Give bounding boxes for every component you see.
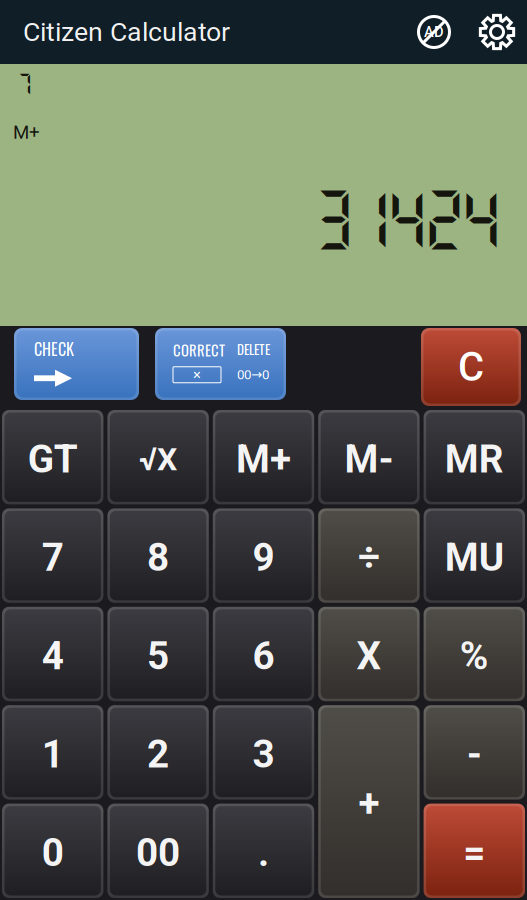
button[interactable]: 5 [105,605,211,703]
staticText: % [460,633,489,679]
staticText: 9 [252,535,274,580]
button[interactable]: √X [105,408,211,506]
staticText: C [458,344,484,390]
button[interactable]: 2 [105,703,211,802]
staticText: = [463,830,485,875]
button[interactable]: X [316,605,422,703]
button[interactable]: 8 [105,506,211,605]
button[interactable]: = [422,802,527,900]
staticText: + [358,781,379,826]
button[interactable]: M+ [211,408,316,506]
staticText: 6 [252,633,274,679]
staticText: M- [344,436,393,482]
button[interactable]: 9 [211,506,316,605]
staticText: . [258,830,269,875]
button[interactable]: MR [422,408,527,506]
staticText: 1 [42,732,64,777]
staticText: MU [445,535,504,580]
button[interactable]: + [316,703,422,900]
staticText: Citizen Calculator [23,16,230,48]
staticText: MR [445,436,504,482]
staticText: 7 [42,535,64,580]
staticText: ÷ [358,535,380,580]
staticText: √X [139,440,177,478]
button[interactable]: - [422,703,527,802]
button[interactable]: C [421,328,521,406]
button[interactable]: 3 [211,703,316,802]
button[interactable]: ÷ [316,506,422,605]
staticText: 8 [147,535,169,580]
staticText: 3 [252,732,274,777]
staticText: X [356,633,381,679]
button[interactable]: . [211,802,316,900]
button[interactable]: 6 [211,605,316,703]
button[interactable]: 1 [0,703,105,802]
button[interactable]: % [422,605,527,703]
staticText: 31424 [310,180,505,256]
button[interactable]: 7 [0,506,105,605]
staticText: 2 [147,732,169,777]
button[interactable]: MU [422,506,527,605]
button[interactable]: GT [0,408,105,506]
button[interactable]: Settings [474,9,520,55]
staticText: 5 [147,633,169,679]
staticText: CHECK [34,337,74,361]
staticText: 7 [16,70,33,97]
staticText: M+ [13,121,40,143]
staticText: - [467,732,482,777]
staticText: DELETE [237,339,270,359]
button[interactable]: 4 [0,605,105,703]
staticText: 4 [42,633,64,679]
button[interactable]: M- [316,408,422,506]
button[interactable]: CHECK [14,328,139,400]
staticText: CORRECT [173,339,225,361]
staticText: GT [28,436,78,482]
button[interactable]: 00 [105,802,211,900]
staticText: × [193,366,201,383]
button[interactable]: Remove ads [411,9,457,55]
staticText: AD [424,23,444,41]
staticText: M+ [236,436,291,482]
staticText: 0 [42,830,64,875]
staticText: 00→0 [237,367,269,382]
button[interactable]: 0 [0,802,105,900]
staticText: 00 [136,830,180,875]
button[interactable]: CORRECT [155,328,286,400]
